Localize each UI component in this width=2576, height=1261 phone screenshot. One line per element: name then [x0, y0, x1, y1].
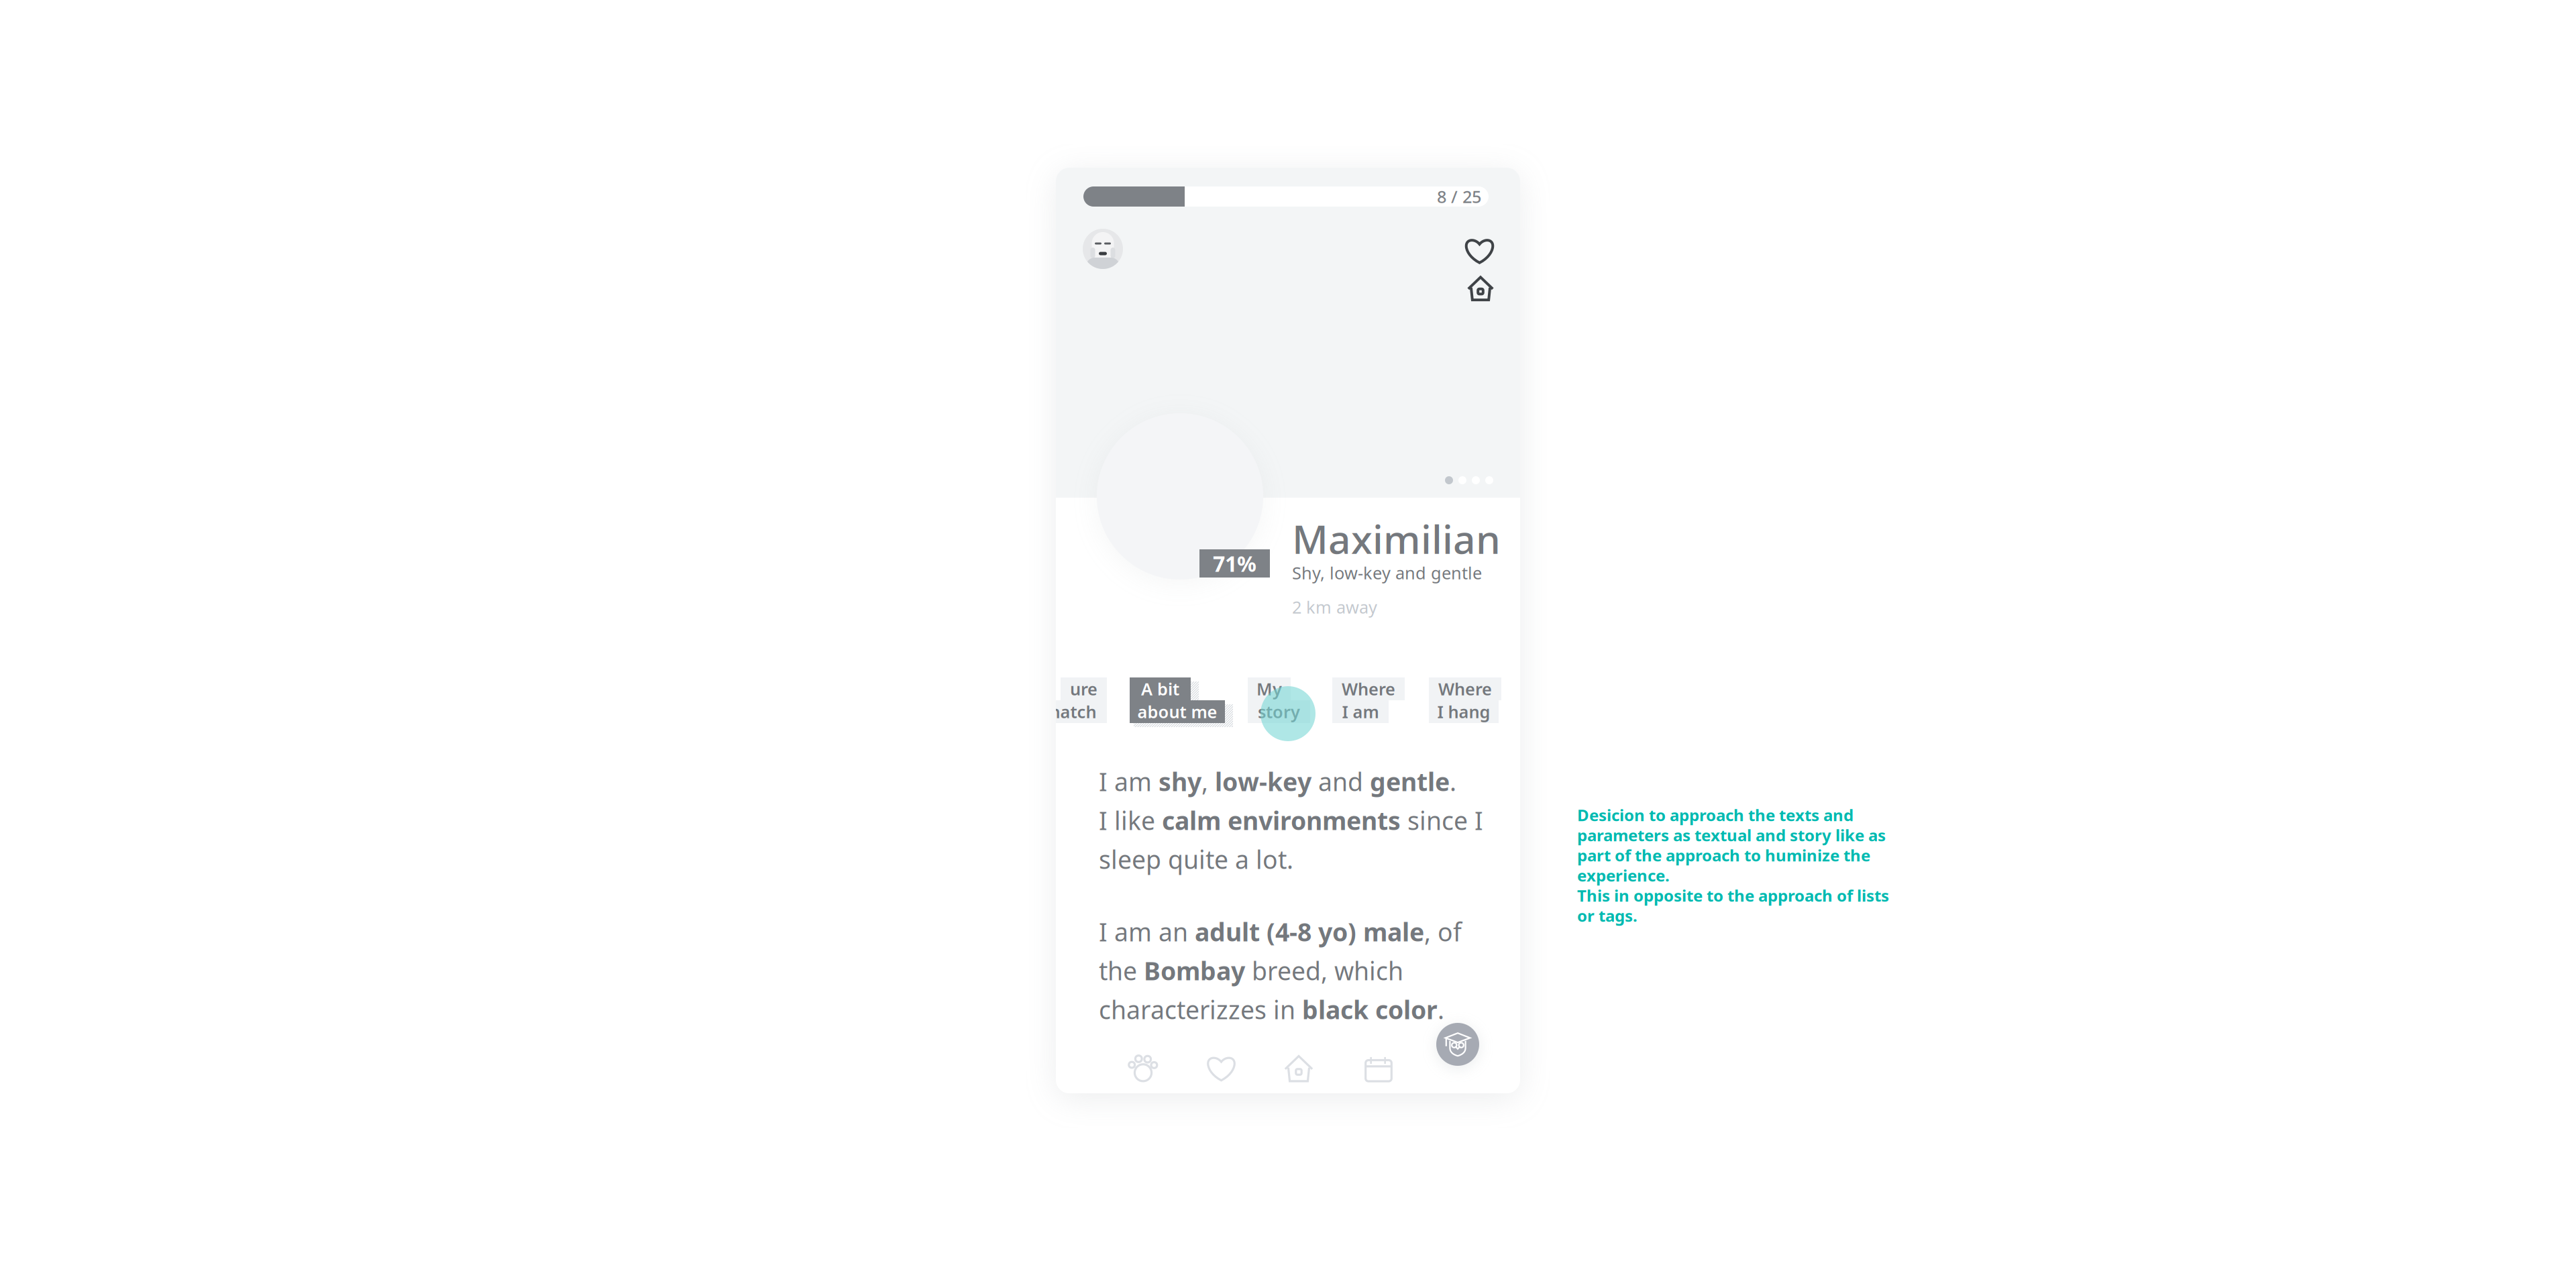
staticText: about me — [1137, 700, 1217, 723]
staticText: A bit — [1141, 678, 1179, 700]
staticText: Where — [1342, 678, 1395, 700]
staticText: I hang — [1437, 700, 1490, 723]
staticText: parameters as textual and story like as — [1577, 824, 1886, 846]
staticText: Desicion to approach the texts and — [1577, 804, 1854, 826]
button[interactable]: A bit — [1130, 677, 1225, 723]
staticText: ure — [1070, 678, 1097, 700]
staticText: I am shy, low-key and gentle. — [1099, 765, 1456, 798]
button[interactable]: Adopt — [1468, 276, 1493, 301]
staticText: part of the approach to huminize the — [1577, 845, 1870, 866]
staticText: I am an adult (4-8 yo) male, of — [1099, 915, 1462, 948]
staticText: This in opposite to the approach of list… — [1577, 885, 1889, 906]
staticText: Maximilian — [1292, 512, 1501, 565]
staticText: the Bombay breed, which — [1099, 954, 1403, 987]
staticText: or tags. — [1577, 905, 1638, 926]
button[interactable]: Where — [1429, 677, 1501, 723]
staticText: I am — [1342, 700, 1379, 723]
staticText: experience. — [1577, 865, 1670, 886]
button[interactable]: Like — [1465, 238, 1494, 264]
button[interactable]: Favourites — [1207, 1056, 1236, 1081]
button[interactable]: Calendar — [1364, 1055, 1393, 1083]
staticText: Shy, low-key and gentle — [1292, 562, 1482, 584]
staticText: 71% — [1213, 549, 1256, 578]
staticText: 2 km away — [1292, 596, 1377, 618]
button[interactable]: Shelters — [1285, 1054, 1313, 1083]
staticText: story — [1258, 700, 1300, 723]
staticText: sleep quite a lot. — [1099, 843, 1293, 876]
button[interactable]: Pets — [1129, 1054, 1157, 1083]
button[interactable]: My — [1248, 677, 1310, 723]
button[interactable]: Learn more — [1436, 1023, 1479, 1066]
staticText: 8 / 25 — [1437, 185, 1481, 208]
button[interactable]: Your profile — [1083, 229, 1123, 269]
staticText: Where — [1438, 678, 1492, 700]
staticText: I like calm environments since I — [1099, 804, 1483, 837]
staticText: My — [1256, 678, 1282, 700]
staticText: characterizzes in black color. — [1099, 993, 1444, 1026]
staticText: natch — [1050, 700, 1096, 723]
button[interactable]: Where — [1332, 677, 1405, 723]
